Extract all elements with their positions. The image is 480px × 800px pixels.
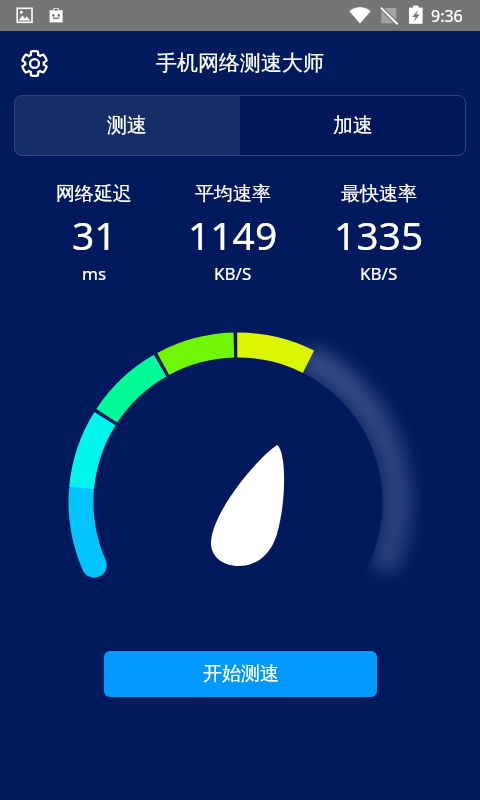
staticText: 手机网络测速大师 (156, 50, 324, 76)
button[interactable]: 加速 (240, 95, 466, 156)
staticText: 加速 (333, 113, 373, 138)
staticText: ms (82, 262, 107, 285)
staticText: 9:36 (431, 5, 463, 27)
button[interactable]: 测速 (14, 95, 240, 156)
staticText: 网络延迟 (56, 182, 132, 206)
staticText: 平均速率 (195, 182, 271, 206)
button[interactable]: 开始测速 (104, 651, 377, 697)
staticText: 测速 (107, 113, 147, 138)
staticText: 开始测速 (203, 662, 279, 686)
staticText: 31 (72, 208, 117, 261)
staticText: 1335 (334, 208, 424, 261)
staticText: KB/S (360, 262, 398, 285)
button[interactable]: Settings (12, 41, 56, 85)
staticText: KB/S (214, 262, 252, 285)
staticText: 最快速率 (341, 182, 417, 206)
staticText: 1149 (188, 208, 278, 261)
